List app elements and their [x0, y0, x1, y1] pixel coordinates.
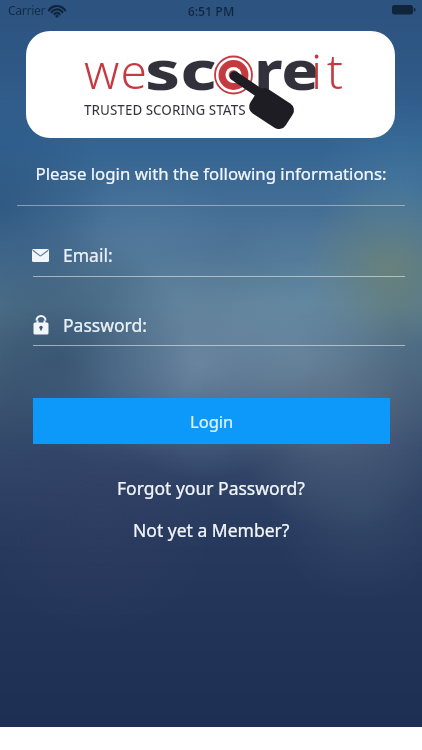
staticText: Carrier: [8, 2, 46, 19]
button[interactable]: Email:: [17, 240, 405, 270]
staticText: re: [254, 32, 320, 106]
staticText: 6:51 PM: [0, 3, 422, 20]
staticText: it: [311, 38, 348, 103]
button[interactable]: Password:: [17, 310, 405, 340]
button[interactable]: Not yet a Member?: [133, 518, 290, 542]
staticText: Login: [190, 410, 234, 432]
staticText: Please login with the following informat…: [0, 162, 422, 185]
staticText: sc: [145, 32, 217, 106]
staticText: we: [84, 38, 149, 103]
button[interactable]: Forgot your Password?: [117, 476, 305, 500]
button[interactable]: Login: [33, 398, 390, 444]
staticText: Password:: [63, 313, 147, 337]
staticText: TRUSTED SCORING STATS: [84, 100, 246, 119]
staticText: Email:: [63, 243, 113, 267]
